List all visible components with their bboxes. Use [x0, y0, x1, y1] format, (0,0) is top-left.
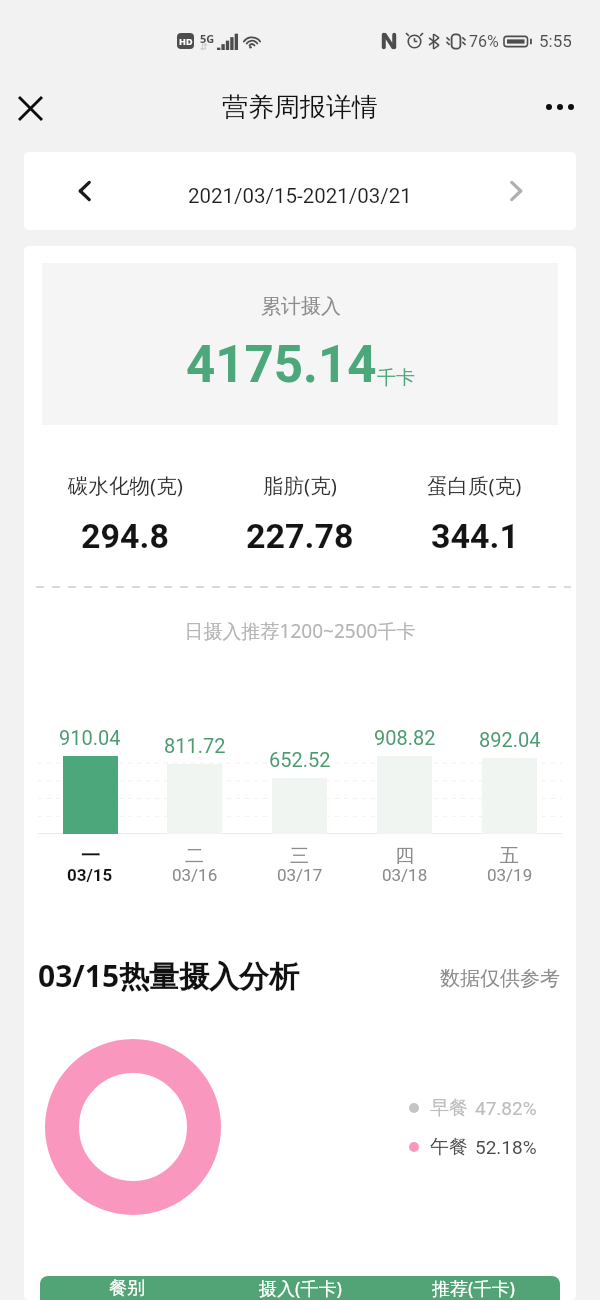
staticText: 03/19	[487, 865, 533, 885]
staticText: 一	[81, 844, 100, 868]
button[interactable]: Next week	[496, 171, 536, 211]
staticText: ⇵	[200, 42, 208, 52]
staticText: 652.52	[269, 748, 331, 771]
staticText: 累计摄入	[261, 294, 341, 319]
staticText: 76%	[469, 32, 499, 51]
staticText: 蛋白质(克)	[427, 471, 522, 499]
staticText: 日摄入推荐1200~2500千卡	[24, 618, 576, 644]
staticText: 227.78	[246, 516, 354, 556]
button[interactable]: More options	[536, 83, 584, 131]
staticText: 344.1	[431, 516, 519, 556]
staticText: 03/15	[67, 865, 113, 885]
staticText: 5:55	[539, 31, 572, 51]
staticText: 03/16	[172, 865, 218, 885]
staticText: 千卡	[377, 366, 415, 390]
staticText: 03/17	[277, 865, 323, 885]
staticText: 四	[395, 844, 414, 868]
staticText: 二	[185, 844, 204, 868]
staticText: 03/18	[382, 865, 428, 885]
staticText: 五	[500, 844, 519, 868]
staticText: 碳水化物(克)	[68, 471, 183, 499]
staticText: HD	[179, 35, 193, 47]
staticText: 03/15热量摄入分析	[38, 955, 300, 996]
staticText: 908.82	[374, 726, 436, 749]
staticText: 餐别	[40, 1277, 214, 1300]
staticText: 892.04	[479, 728, 541, 751]
staticText: 数据仅供参考	[440, 966, 560, 991]
staticText: 294.8	[81, 516, 169, 556]
staticText: 47.82%	[475, 1097, 537, 1119]
staticText: 910.04	[59, 726, 121, 749]
staticText: 2021/03/15-2021/03/21	[188, 184, 412, 208]
staticText: 摄入(千卡)	[214, 1276, 387, 1300]
staticText: 营养周报详情	[222, 91, 378, 124]
staticText: 811.72	[164, 734, 226, 757]
staticText: 午餐	[430, 1135, 468, 1159]
staticText: 推荐(千卡)	[387, 1276, 560, 1300]
staticText: 5G	[200, 31, 215, 46]
staticText: 4175.14	[186, 335, 377, 395]
button[interactable]: Close	[6, 84, 54, 132]
staticText: 脂肪(克)	[263, 471, 337, 499]
staticText: 三	[290, 844, 309, 868]
staticText: 52.18%	[475, 1136, 537, 1158]
staticText: 早餐	[430, 1096, 468, 1120]
button[interactable]: Previous week	[64, 171, 104, 211]
